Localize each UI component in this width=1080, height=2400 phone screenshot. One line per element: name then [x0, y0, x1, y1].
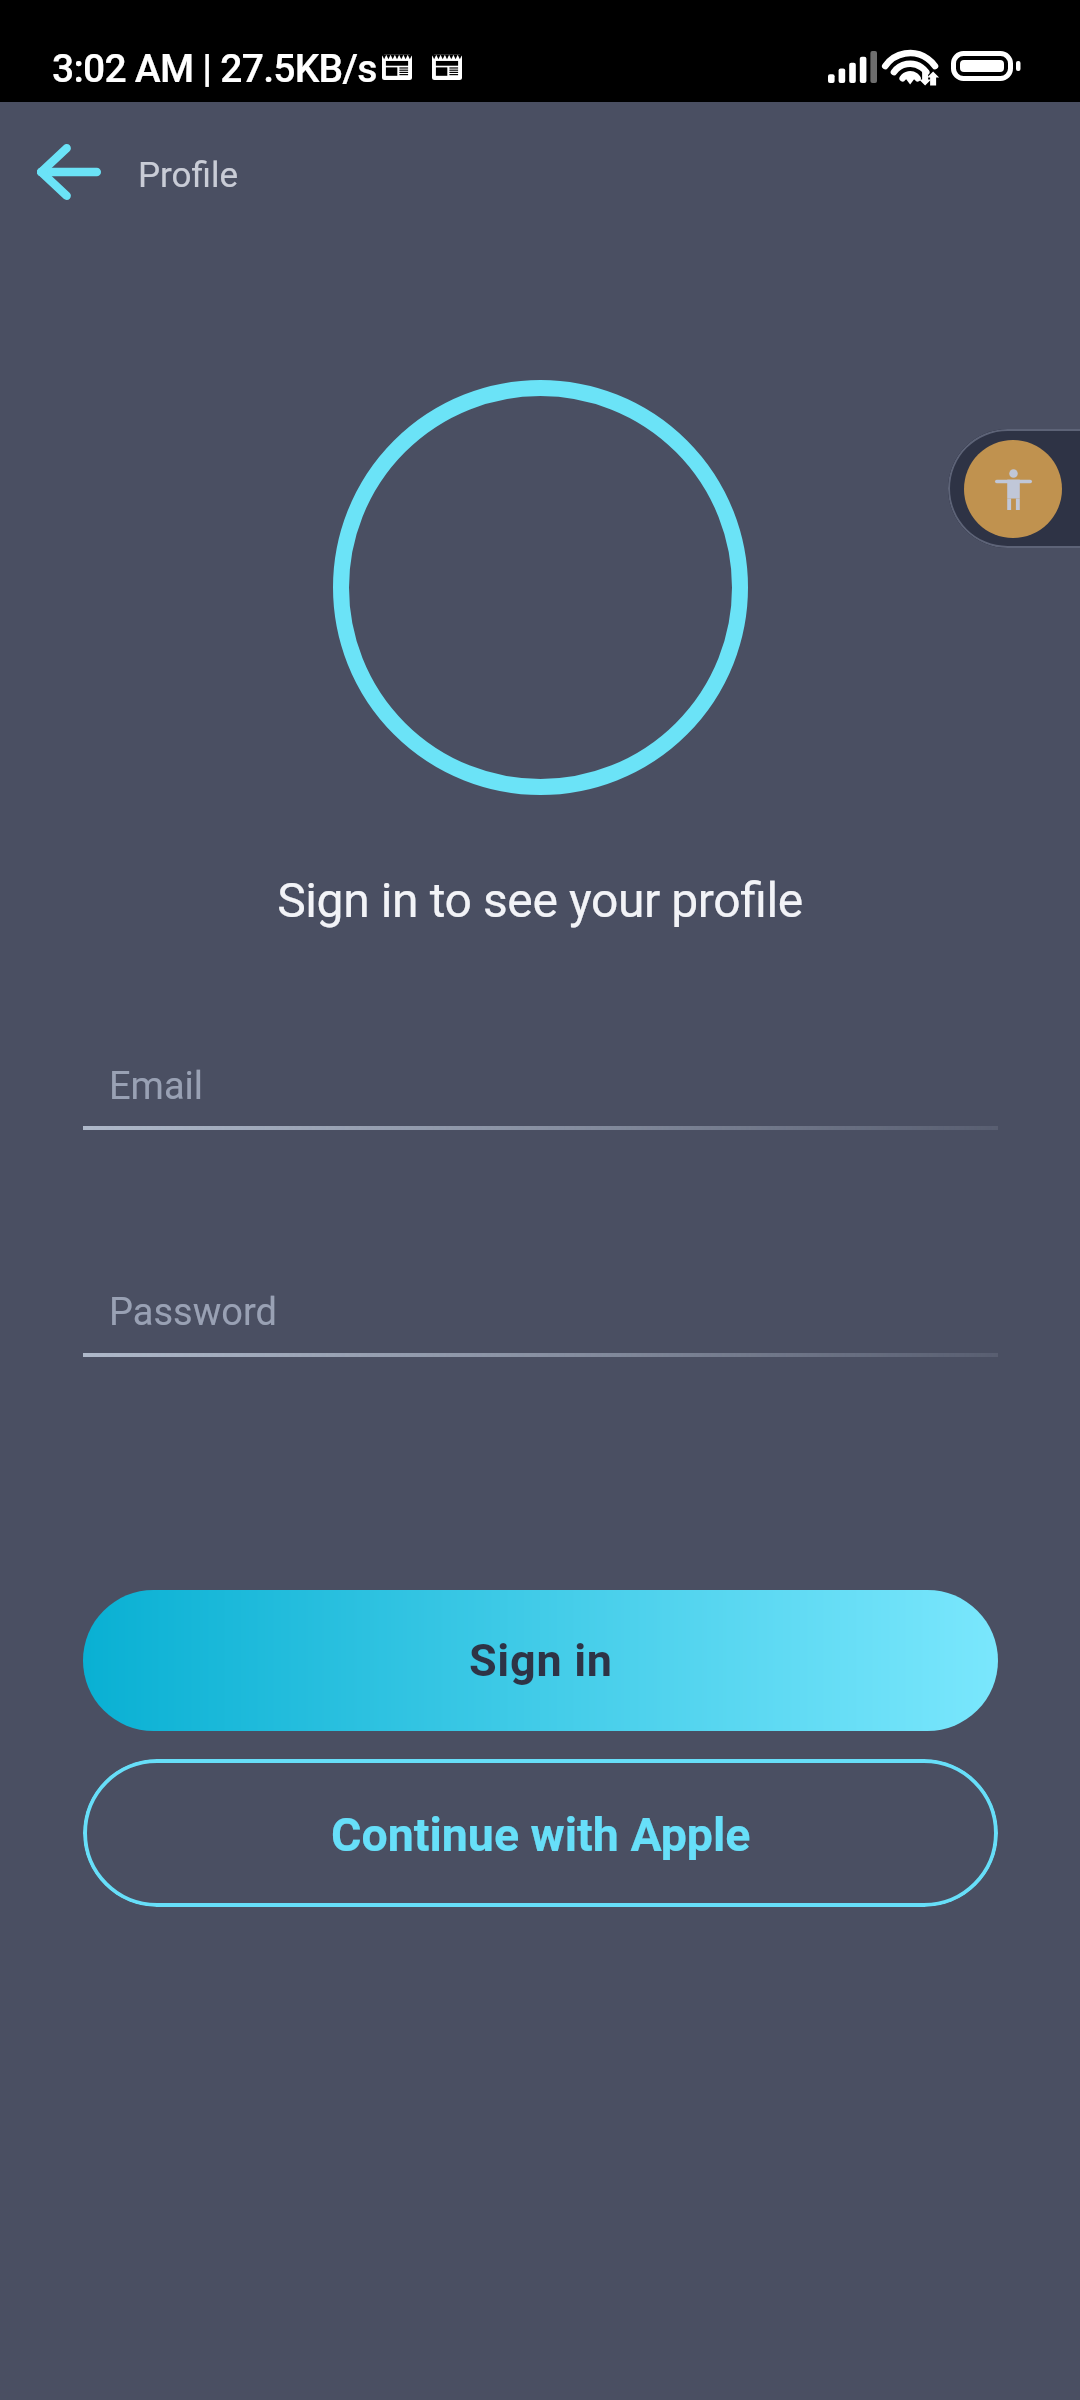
button[interactable] [83, 1266, 998, 1359]
staticText: Continue with Apple [331, 1808, 751, 1862]
button[interactable]: Back [0, 128, 132, 216]
button[interactable]: Accessibility [948, 429, 1080, 548]
button[interactable]: Continue with Apple [83, 1759, 998, 1907]
button[interactable]: Sign in [83, 1590, 998, 1731]
button[interactable] [83, 1040, 998, 1132]
staticText: 3:02 AM | 27.5KB/s [52, 46, 377, 92]
staticText: Email [109, 1064, 204, 1109]
staticText: Password [109, 1290, 277, 1335]
staticText: Profile [138, 155, 239, 196]
staticText: Sign in to see your profile [0, 872, 1080, 928]
staticText: Sign in [469, 1634, 613, 1687]
